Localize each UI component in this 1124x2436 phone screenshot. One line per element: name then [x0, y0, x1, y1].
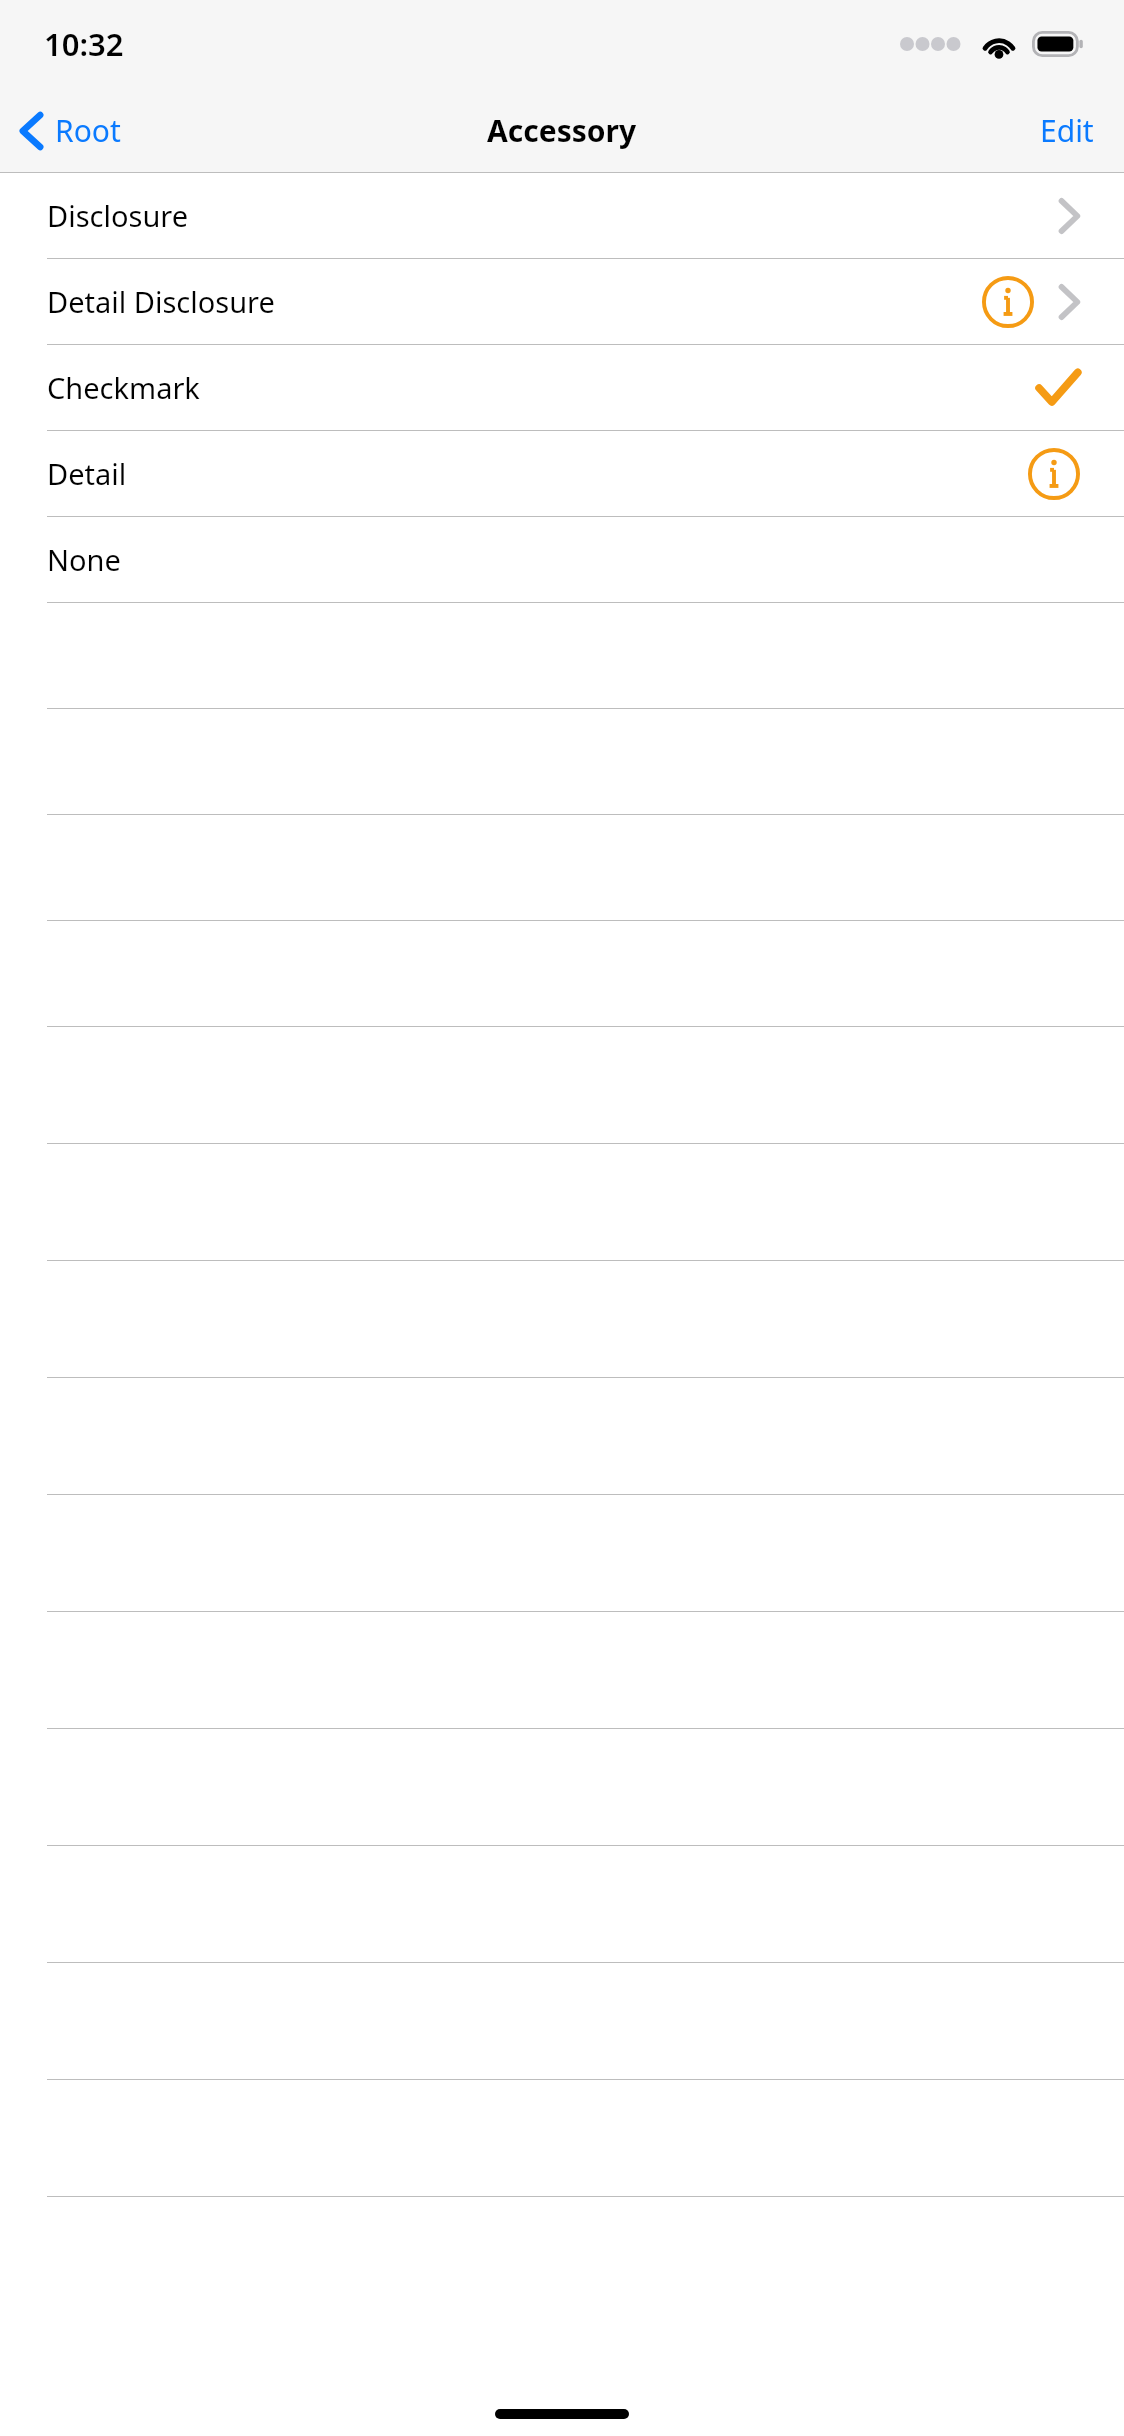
other: Disclosure [1058, 198, 1080, 234]
button[interactable]: Disclosure [0, 173, 1124, 259]
button[interactable]: Root [0, 100, 139, 161]
staticText: 10:32 [44, 23, 124, 65]
button[interactable]: More info [982, 276, 1034, 328]
other: Disclosure [1058, 284, 1080, 320]
staticText: Disclosure [47, 196, 189, 235]
button[interactable]: Checkmark [0, 345, 1124, 431]
staticText: Detail [47, 454, 127, 493]
button[interactable]: Detail Disclosure [0, 259, 1124, 345]
staticText: Accessory [487, 110, 637, 151]
staticText: None [47, 540, 121, 579]
button[interactable]: Detail [0, 431, 1124, 517]
button[interactable]: More info [1028, 448, 1080, 500]
staticText: Detail Disclosure [47, 282, 275, 321]
button[interactable]: Edit [1014, 98, 1124, 163]
staticText: Edit [1040, 110, 1094, 151]
staticText: Checkmark [47, 368, 200, 407]
staticText: Root [55, 110, 121, 151]
other: Selected [1036, 368, 1080, 408]
button[interactable]: None [0, 517, 1124, 603]
